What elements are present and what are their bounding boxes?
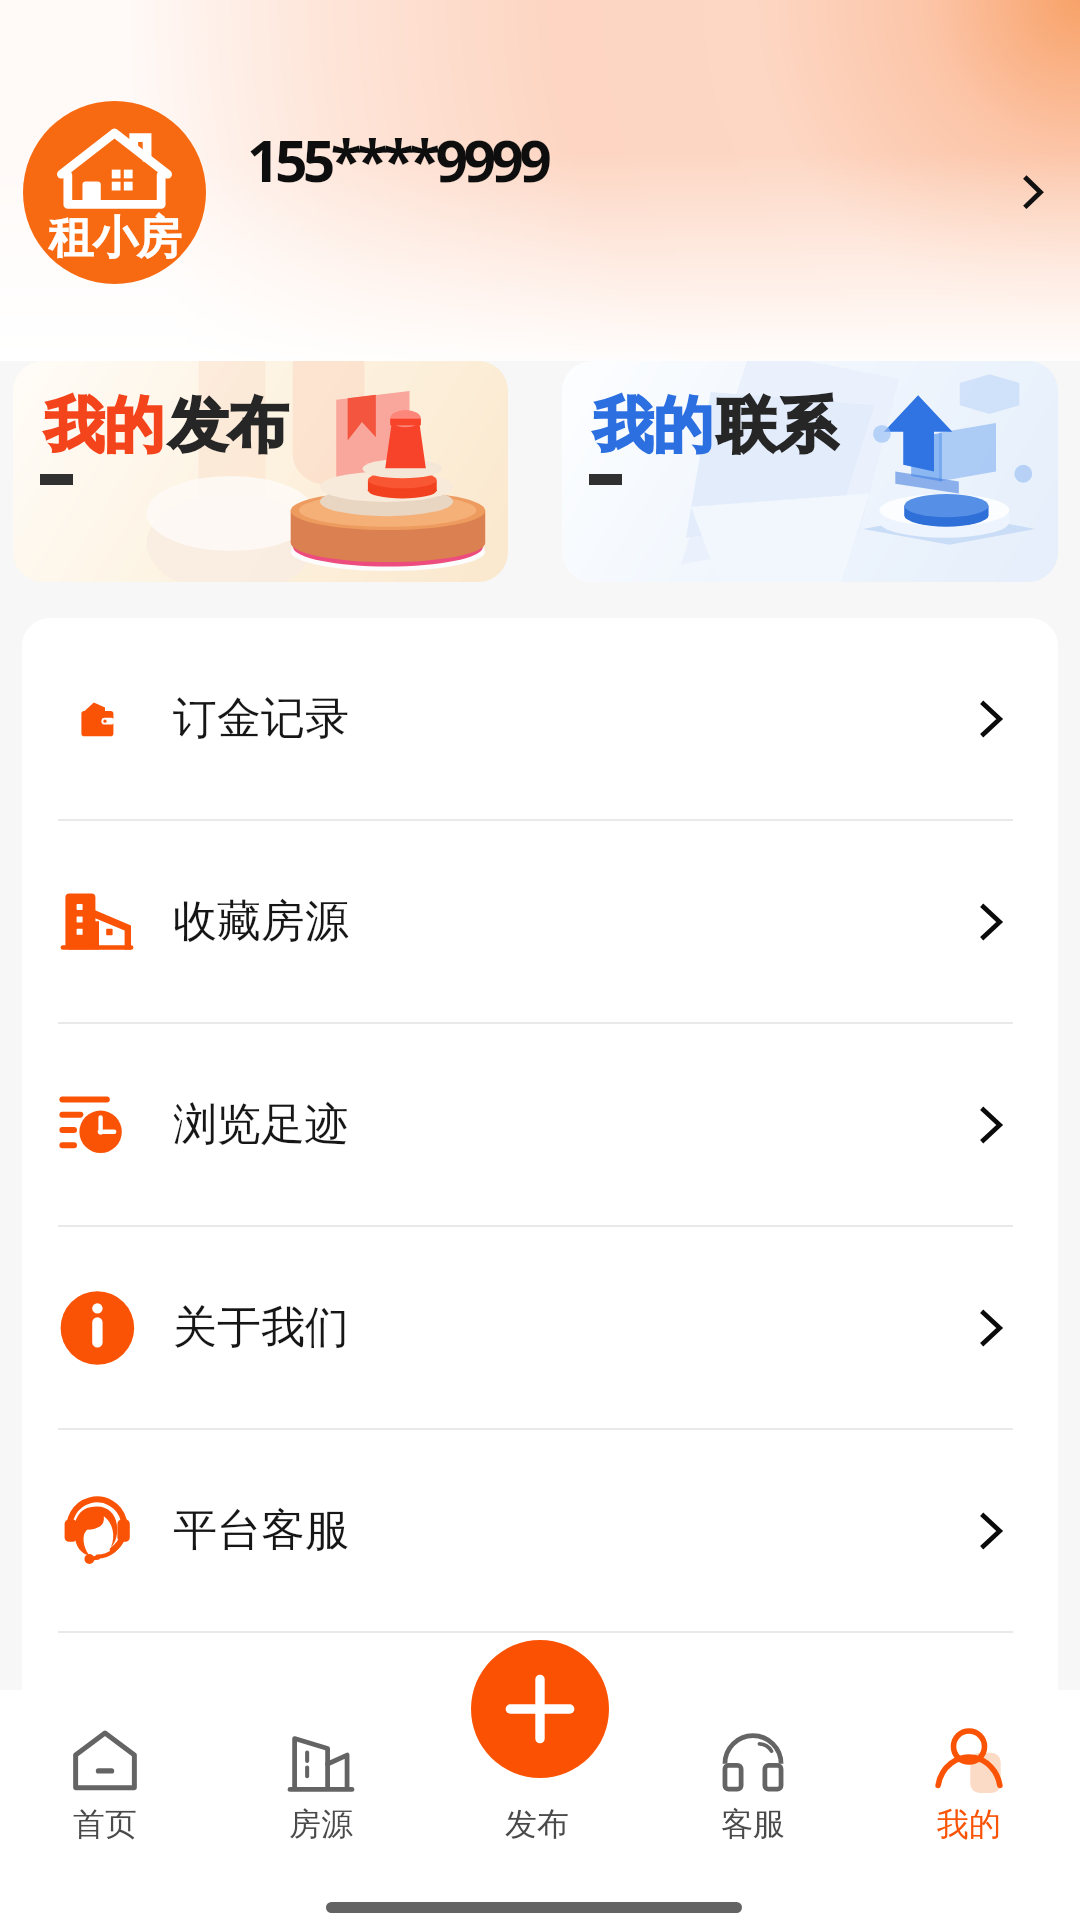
staticText: 房源 [289,1804,353,1844]
button[interactable]: 我的 [562,361,1058,582]
staticText: 租小房 [49,210,181,267]
button[interactable]: 租小房 [0,78,1080,308]
button[interactable]: 订金记录 [22,618,1058,819]
button[interactable]: 房源 [213,1690,429,1855]
staticText: 我的 [593,388,713,464]
button[interactable]: 我的 [13,361,508,582]
button[interactable]: 收藏房源 [22,821,1058,1022]
button[interactable]: 发布 [471,1640,609,1778]
button[interactable]: 平台客服 [22,1430,1058,1631]
button[interactable]: 浏览足迹 [22,1024,1058,1225]
staticText: 平台客服 [173,1503,349,1558]
staticText: 我的 [44,388,164,464]
staticText: 订金记录 [173,691,349,746]
staticText: 发布 [168,388,288,464]
button[interactable]: 客服 [645,1690,861,1855]
staticText: 客服 [721,1804,785,1844]
staticText: 浏览足迹 [173,1097,349,1152]
staticText: 首页 [73,1804,137,1844]
staticText: 155****9999 [247,121,548,199]
staticText: 发布 [505,1804,569,1844]
staticText: 收藏房源 [173,894,349,949]
button[interactable]: 关于我们 [22,1227,1058,1428]
staticText: 我的 [937,1804,1001,1844]
staticText: 关于我们 [173,1300,349,1355]
button[interactable]: 发布 [429,1690,645,1855]
button[interactable]: 首页 [0,1690,213,1855]
button[interactable]: 我的 [861,1690,1077,1855]
staticText: 联系 [717,388,837,464]
